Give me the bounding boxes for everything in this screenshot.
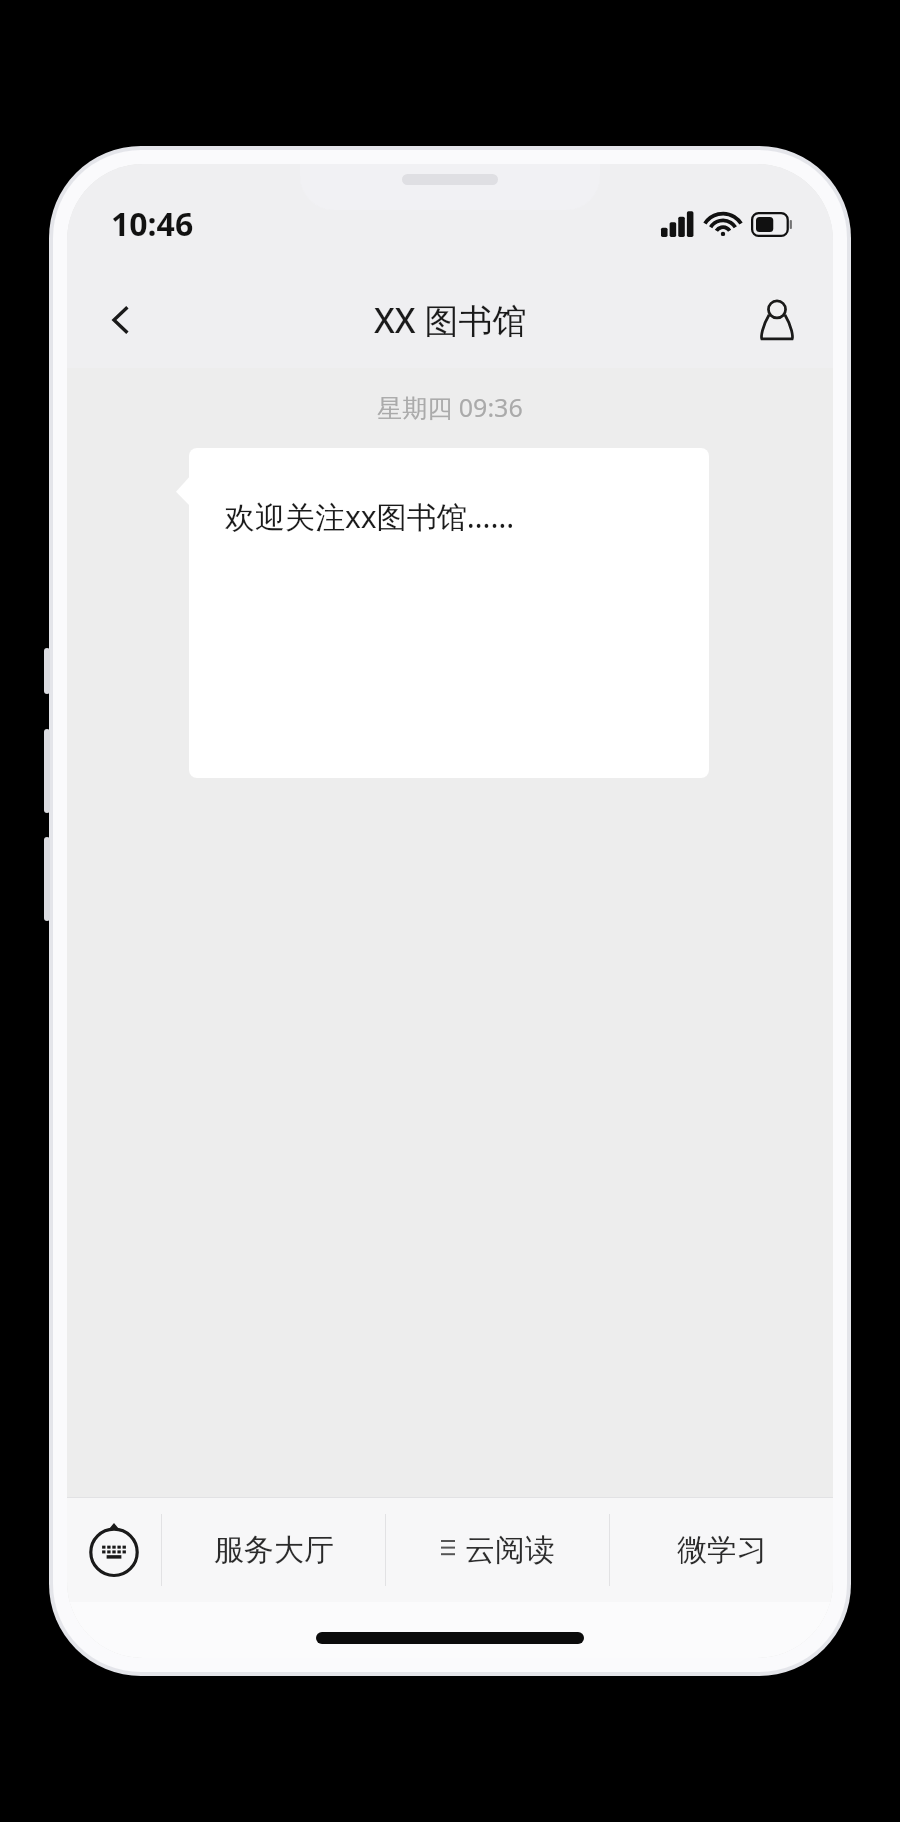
button[interactable]: 云阅读 — [386, 1498, 609, 1602]
staticText: 微学习 — [677, 1531, 767, 1569]
button[interactable]: Back — [85, 284, 157, 356]
button[interactable]: 服务大厅 — [162, 1498, 385, 1602]
button[interactable]: Keyboard — [67, 1498, 161, 1602]
staticText: 欢迎关注xx图书馆…… — [225, 496, 515, 537]
button[interactable]: 微学习 — [610, 1498, 833, 1602]
staticText: XX 图书馆 — [374, 297, 527, 343]
button[interactable]: Contact — [741, 284, 813, 356]
button[interactable]: 欢迎关注xx图书馆…… — [189, 448, 709, 778]
staticText: 10:46 — [111, 202, 194, 246]
staticText: 服务大厅 — [214, 1531, 334, 1569]
staticText: 星期四 09:36 — [67, 390, 833, 424]
staticText: 云阅读 — [465, 1531, 555, 1569]
